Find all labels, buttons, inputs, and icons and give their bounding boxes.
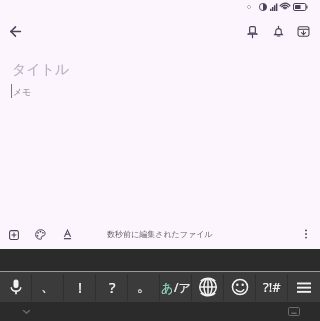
button[interactable]: ?!# <box>256 272 288 302</box>
button[interactable]: Add <box>0 221 27 248</box>
button[interactable]: 、 <box>32 272 64 302</box>
button[interactable]: Switch keyboard <box>282 302 306 321</box>
button[interactable]: 。 <box>128 272 160 302</box>
button[interactable]: Color palette <box>27 221 54 248</box>
button[interactable]: あ <box>160 272 192 302</box>
staticText: タイトル <box>12 61 70 79</box>
button[interactable]: Reminder <box>266 19 291 44</box>
button[interactable] <box>224 272 256 302</box>
staticText: 、 <box>41 278 55 296</box>
staticText: ! <box>78 277 83 297</box>
staticText: /ア <box>174 279 191 295</box>
button[interactable] <box>192 272 224 302</box>
button[interactable]: Back <box>3 19 28 44</box>
staticText: あ <box>161 280 174 295</box>
staticText: 数秒前に編集されたファイル <box>107 229 213 239</box>
button[interactable]: Text formatting <box>54 221 81 248</box>
button[interactable]: Pin <box>240 19 265 44</box>
staticText: 。 <box>137 278 151 296</box>
button[interactable]: More options <box>292 220 320 248</box>
button[interactable]: Hide keyboard <box>14 302 38 321</box>
button[interactable]: ! <box>64 272 96 302</box>
button[interactable]: Archive <box>291 19 316 44</box>
staticText: ?!# <box>263 278 281 296</box>
button[interactable]: ? <box>96 272 128 302</box>
button[interactable] <box>288 272 320 302</box>
staticText: ? <box>109 277 116 297</box>
staticText: メモ <box>13 86 32 97</box>
button[interactable] <box>0 272 32 302</box>
